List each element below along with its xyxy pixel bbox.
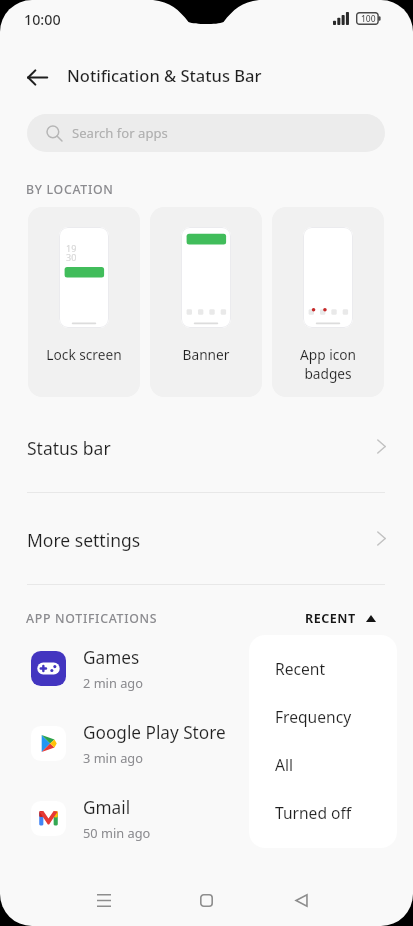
button[interactable]: RECENT — [299, 604, 382, 632]
staticText: More settings — [27, 528, 141, 552]
staticText: Games — [83, 646, 140, 669]
button[interactable]: Status bar — [0, 419, 413, 477]
staticText: Banner — [150, 345, 262, 364]
staticText: Google Play Store — [83, 721, 226, 744]
staticText: 3 min ago — [83, 749, 143, 766]
button[interactable]: 19 30 — [28, 207, 140, 397]
button[interactable]: Recent — [249, 644, 397, 692]
button[interactable]: Google Play Store — [0, 718, 413, 768]
staticText: Search for apps — [72, 124, 168, 142]
staticText: 10:00 — [24, 10, 61, 29]
button[interactable]: All — [249, 740, 397, 788]
staticText: Notification & Status Bar — [67, 64, 262, 86]
staticText: App icon badges — [272, 345, 384, 383]
staticText: RECENT — [305, 610, 356, 627]
staticText: Lock screen — [28, 345, 140, 364]
button[interactable]: Back — [19, 59, 55, 95]
button[interactable]: Turned off — [249, 788, 397, 836]
staticText: All — [275, 754, 294, 775]
button[interactable]: Home — [182, 876, 230, 924]
button[interactable]: App icon badges — [272, 207, 384, 397]
staticText: 50 min ago — [83, 824, 151, 841]
staticText: 19 30 — [66, 242, 77, 264]
button[interactable]: Banner — [150, 207, 262, 397]
staticText: Status bar — [27, 436, 111, 460]
staticText: BY LOCATION — [26, 181, 114, 198]
staticText: Turned off — [275, 802, 352, 823]
button[interactable]: Recents — [80, 876, 128, 924]
staticText: APP NOTIFICATIONS — [26, 610, 158, 627]
staticText: Frequency — [275, 706, 352, 727]
staticText: 2 min ago — [83, 674, 143, 691]
button[interactable]: Frequency — [249, 692, 397, 740]
button[interactable]: More settings — [0, 511, 413, 569]
button[interactable]: Games — [0, 643, 413, 693]
button[interactable]: Gmail — [0, 793, 413, 843]
staticText: Recent — [275, 658, 326, 679]
staticText: 100 — [361, 13, 376, 25]
button[interactable]: Search for apps — [27, 114, 385, 152]
staticText: Gmail — [83, 796, 131, 819]
button[interactable]: Back — [277, 876, 325, 924]
